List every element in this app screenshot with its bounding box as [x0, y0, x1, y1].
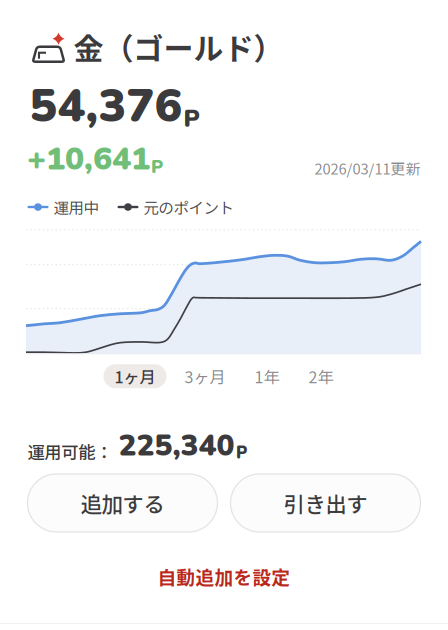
staticText: 運用可能： [27, 439, 112, 464]
staticText: 2年 [308, 365, 333, 388]
staticText: 54,376 [29, 74, 182, 137]
staticText: +10,641 [27, 137, 150, 181]
staticText: P [151, 155, 163, 179]
staticText: P [183, 102, 199, 135]
staticText: 元のポイント [143, 196, 233, 218]
staticText: 金（ゴールド） [73, 25, 283, 68]
staticText: 1ヶ月 [114, 365, 155, 388]
button[interactable]: 1年 [243, 364, 290, 388]
button[interactable]: 追加する [27, 474, 217, 532]
button[interactable]: 引き出す [230, 474, 420, 532]
staticText: 225,340 [118, 425, 234, 466]
staticText: 追加する [80, 487, 164, 518]
staticText: 2026/03/11更新 [314, 158, 420, 179]
staticText: 引き出す [283, 487, 367, 518]
button[interactable]: 1ヶ月 [103, 364, 166, 388]
button[interactable]: 3ヶ月 [173, 364, 236, 388]
button[interactable]: 2年 [297, 364, 344, 388]
staticText: 自動追加を設定 [157, 563, 290, 590]
staticText: 3ヶ月 [184, 365, 225, 388]
staticText: 1年 [254, 365, 279, 388]
staticText: 運用中 [53, 196, 98, 218]
button[interactable]: 自動追加を設定 [147, 558, 300, 595]
staticText: P [236, 442, 247, 464]
